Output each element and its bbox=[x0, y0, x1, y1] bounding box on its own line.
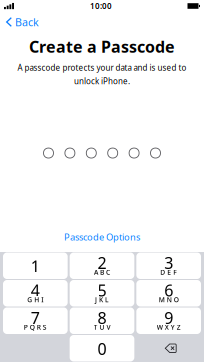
button[interactable]: 4 bbox=[3, 280, 68, 306]
staticText: 2 bbox=[97, 252, 106, 273]
staticText: P Q R S bbox=[24, 323, 47, 332]
staticText: M N O bbox=[159, 295, 179, 304]
staticText: 9 bbox=[164, 307, 173, 328]
button[interactable]: 5 bbox=[70, 280, 134, 306]
staticText: T U V bbox=[93, 323, 110, 332]
button[interactable]: 1 bbox=[3, 252, 68, 279]
button[interactable]: 7 bbox=[3, 307, 68, 334]
staticText: 8 bbox=[97, 307, 106, 328]
staticText: J K L bbox=[95, 295, 109, 304]
staticText: G H I bbox=[27, 295, 43, 304]
button[interactable]: 6 bbox=[136, 280, 201, 306]
staticText: W X Y Z bbox=[157, 323, 181, 332]
staticText: 6 bbox=[164, 280, 173, 301]
staticText: Back bbox=[15, 15, 39, 29]
staticText: A passcode protects your data and is use… bbox=[17, 62, 186, 73]
button[interactable]: 9 bbox=[136, 307, 201, 334]
staticText: 5 bbox=[97, 280, 106, 301]
staticText: 0 bbox=[97, 338, 106, 359]
button[interactable]: Passcode Options bbox=[58, 228, 146, 246]
button[interactable]: 2 bbox=[70, 252, 134, 279]
staticText: Create a Passcode bbox=[29, 36, 175, 57]
staticText: 7 bbox=[31, 307, 40, 328]
staticText: A B C bbox=[94, 268, 110, 277]
staticText: D E F bbox=[160, 268, 177, 277]
staticText: 10:00 bbox=[90, 1, 112, 11]
staticText: 4 bbox=[31, 280, 40, 301]
button[interactable]: Back bbox=[0, 13, 47, 31]
staticText: Passcode Options bbox=[64, 231, 140, 243]
button[interactable]: Delete bbox=[136, 335, 201, 361]
button[interactable]: 3 bbox=[136, 252, 201, 279]
staticText: 1 bbox=[31, 256, 40, 277]
staticText: unlock iPhone. bbox=[74, 76, 130, 86]
button[interactable]: 0 bbox=[70, 335, 134, 361]
staticText: 3 bbox=[164, 252, 173, 273]
button[interactable]: 8 bbox=[70, 307, 134, 334]
